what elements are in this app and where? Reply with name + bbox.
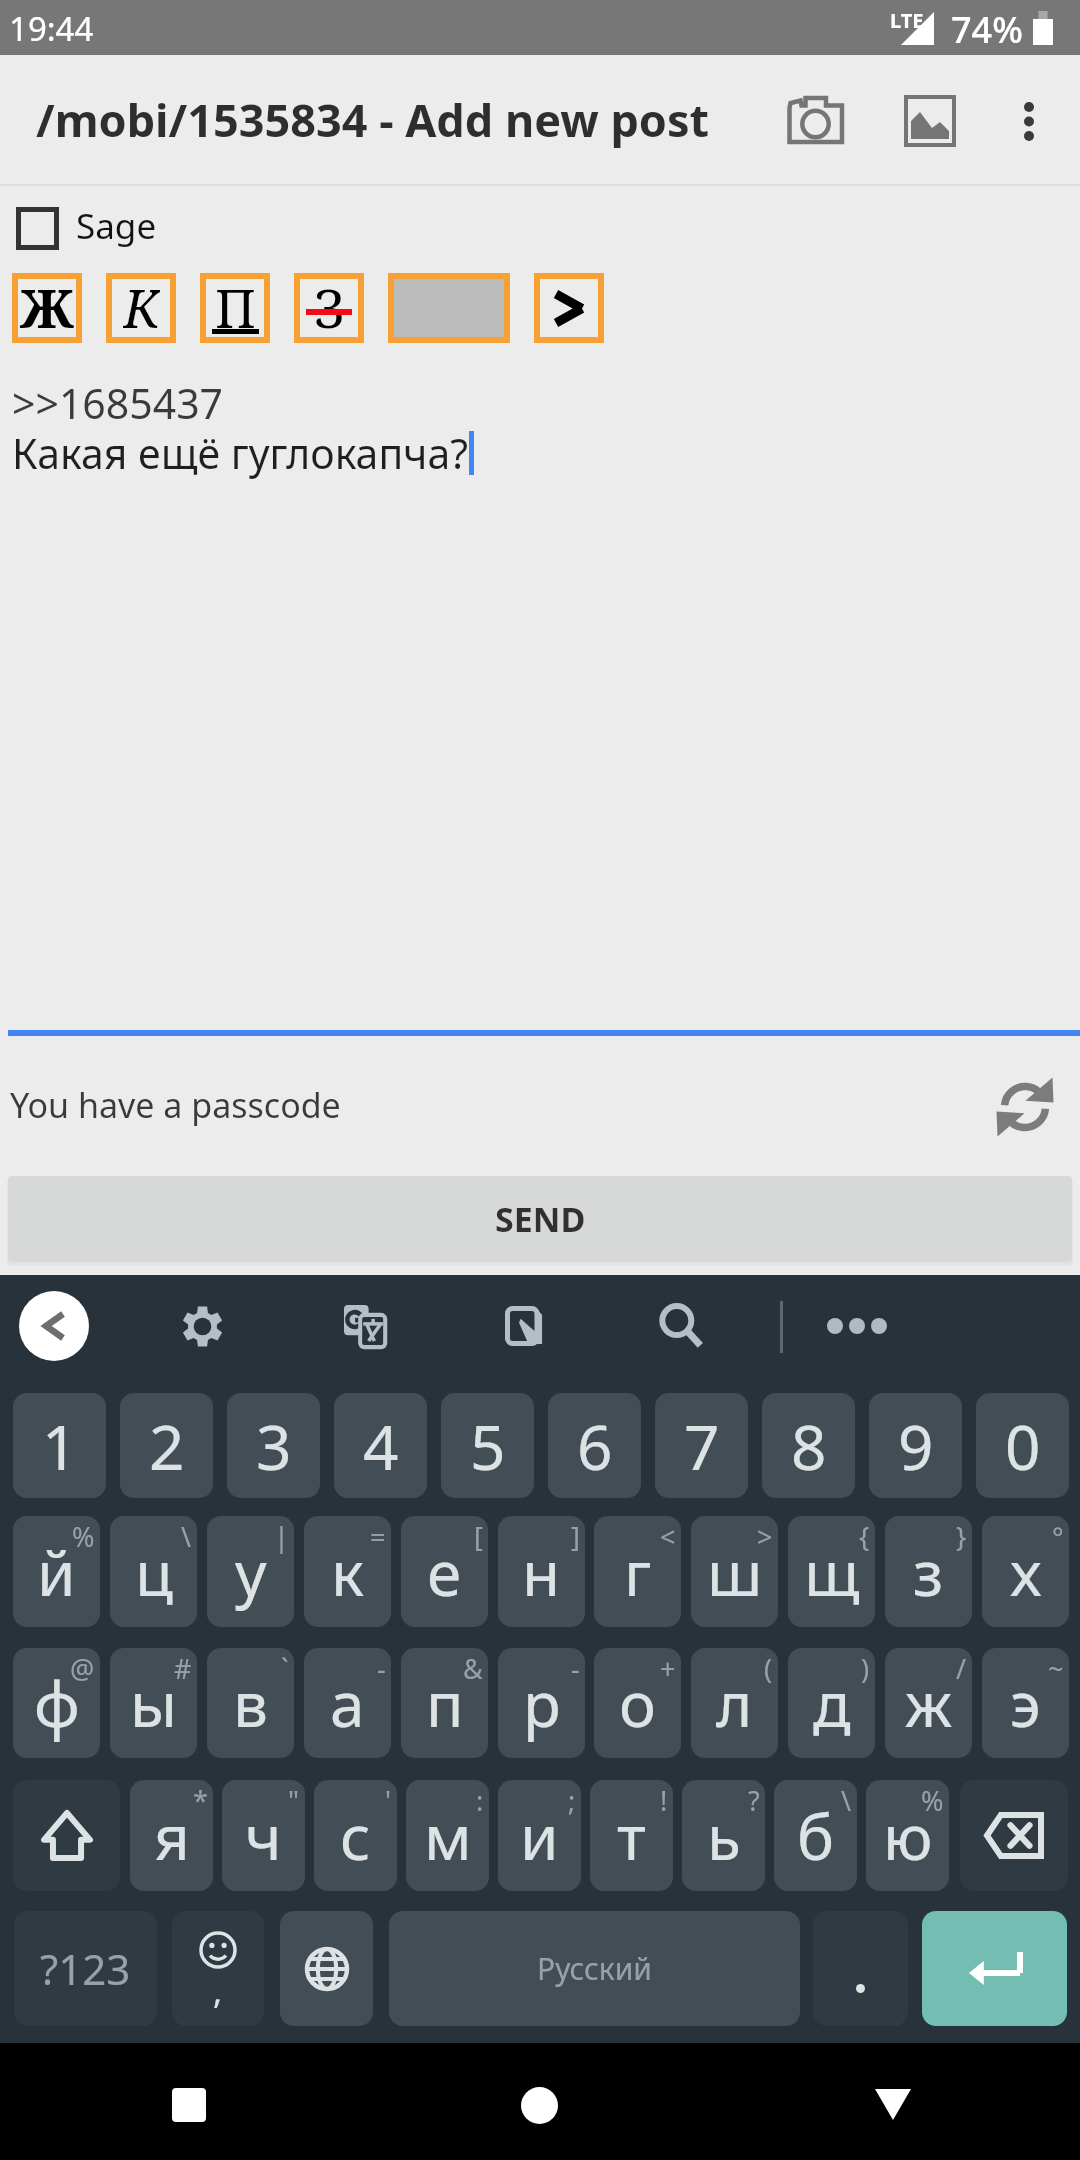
button[interactable]: 2: [120, 1393, 213, 1498]
staticText: с: [340, 1794, 371, 1878]
button[interactable]: б: [774, 1780, 857, 1891]
button[interactable]: л: [691, 1648, 778, 1758]
button[interactable]: р: [498, 1648, 585, 1758]
staticText: К: [123, 272, 160, 330]
button[interactable]: Shift: [13, 1780, 120, 1891]
staticText: 74%: [951, 5, 1023, 54]
button[interactable]: Settings: [167, 1291, 237, 1361]
staticText: (: [764, 1650, 773, 1687]
button[interactable]: ф: [13, 1648, 100, 1758]
staticText: ш: [707, 1530, 763, 1614]
button[interactable]: Close keyboard: [19, 1291, 89, 1361]
button[interactable]: Translate: [329, 1291, 399, 1361]
button[interactable]: н: [498, 1516, 585, 1627]
button[interactable]: о: [594, 1648, 681, 1758]
button[interactable]: [540, 279, 598, 337]
button[interactable]: 6: [548, 1393, 641, 1498]
button[interactable]: Handwriting: [489, 1291, 559, 1361]
staticText: ?: [748, 1782, 760, 1819]
staticText: т: [617, 1794, 646, 1878]
button[interactable]: м: [406, 1780, 489, 1891]
button[interactable]: Attach image: [887, 55, 973, 184]
staticText: ц: [135, 1530, 173, 1614]
button[interactable]: Take photo: [775, 55, 861, 184]
button[interactable]: д: [788, 1648, 875, 1758]
button[interactable]: и: [498, 1780, 581, 1891]
button[interactable]: г: [594, 1516, 681, 1627]
button[interactable]: ы: [110, 1648, 197, 1758]
button[interactable]: 8: [762, 1393, 855, 1498]
button[interactable]: К: [112, 279, 170, 337]
button[interactable]: т: [590, 1780, 673, 1891]
button[interactable]: ц: [110, 1516, 197, 1627]
button[interactable]: More: [822, 1291, 892, 1361]
button[interactable]: е: [401, 1516, 488, 1627]
button[interactable]: э: [982, 1648, 1069, 1758]
staticText: -: [571, 1650, 580, 1687]
button[interactable]: Recents: [132, 2043, 245, 2160]
button[interactable]: Search: [646, 1291, 716, 1361]
button[interactable]: з: [885, 1516, 972, 1627]
button[interactable]: Period: [813, 1911, 908, 2026]
staticText: ь: [707, 1794, 741, 1878]
button[interactable]: ш: [691, 1516, 778, 1627]
staticText: °: [1052, 1518, 1064, 1555]
button[interactable]: а: [304, 1648, 391, 1758]
staticText: \: [841, 1782, 852, 1819]
staticText: 2: [149, 1404, 185, 1488]
button[interactable]: 0: [976, 1393, 1069, 1498]
staticText: э: [1010, 1661, 1041, 1745]
staticText: и: [520, 1794, 559, 1878]
staticText: щ: [804, 1530, 860, 1614]
button[interactable]: й: [13, 1516, 100, 1627]
button[interactable]: у: [207, 1516, 294, 1627]
button[interactable]: SEND: [8, 1176, 1072, 1262]
button[interactable]: ж: [885, 1648, 972, 1758]
button[interactable]: 4: [334, 1393, 427, 1498]
staticText: о: [619, 1661, 656, 1745]
button[interactable]: ю: [866, 1780, 949, 1891]
button[interactable]: Ж: [18, 279, 76, 337]
button[interactable]: ь: [682, 1780, 765, 1891]
button[interactable]: 9: [869, 1393, 962, 1498]
button[interactable]: 1: [13, 1393, 106, 1498]
button[interactable]: Enter: [922, 1911, 1067, 2026]
button[interactable]: ?123: [14, 1911, 157, 2026]
staticText: 0: [1005, 1404, 1041, 1488]
staticText: г: [624, 1530, 652, 1614]
button[interactable]: Home: [483, 2043, 596, 2160]
button[interactable]: Русский: [389, 1911, 800, 2026]
button[interactable]: З: [300, 279, 358, 337]
button[interactable]: [16, 207, 59, 250]
button[interactable]: Refresh captcha: [975, 1072, 1075, 1142]
staticText: :: [476, 1782, 484, 1819]
staticText: р: [523, 1661, 561, 1745]
button[interactable]: 3: [227, 1393, 320, 1498]
button[interactable]: Backspace: [960, 1780, 1068, 1891]
staticText: {: [859, 1518, 870, 1555]
button[interactable]: щ: [788, 1516, 875, 1627]
button[interactable]: в: [207, 1648, 294, 1758]
staticText: п: [426, 1661, 464, 1745]
button[interactable]: Emoji: [172, 1911, 264, 2026]
staticText: д: [813, 1661, 851, 1745]
button[interactable]: 7: [655, 1393, 748, 1498]
button[interactable]: п: [401, 1648, 488, 1758]
button[interactable]: П: [206, 279, 264, 337]
button[interactable]: я: [130, 1780, 213, 1891]
staticText: к: [331, 1530, 364, 1614]
button[interactable]: к: [304, 1516, 391, 1627]
staticText: /: [956, 1650, 967, 1687]
staticText: б: [797, 1794, 835, 1878]
button[interactable]: ч: [222, 1780, 305, 1891]
staticText: >>1685437: [12, 375, 224, 431]
button[interactable]: х: [982, 1516, 1069, 1627]
button[interactable]: More options: [988, 55, 1070, 184]
staticText: %: [921, 1782, 944, 1819]
button[interactable]: 5: [441, 1393, 534, 1498]
button[interactable]: Change language: [280, 1911, 373, 2026]
button[interactable]: Back: [836, 2043, 949, 2160]
staticText: `: [281, 1650, 289, 1687]
button[interactable]: с: [314, 1780, 397, 1891]
